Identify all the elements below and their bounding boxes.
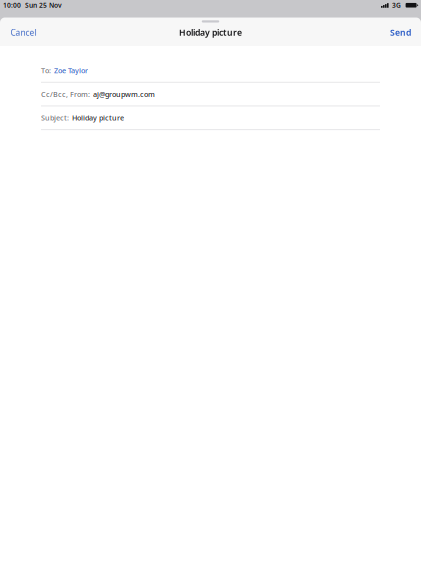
staticText: Send xyxy=(390,26,411,38)
staticText: Holiday picture xyxy=(72,113,124,123)
staticText: Zoe Taylor xyxy=(54,65,88,75)
staticText: Subject: xyxy=(41,113,69,123)
button[interactable]: Send xyxy=(381,21,421,43)
staticText: 10:00 xyxy=(3,1,21,10)
button[interactable]: Cancel xyxy=(0,22,45,43)
staticText: To: xyxy=(41,65,51,75)
staticText: Holiday picture xyxy=(179,26,242,38)
staticText: Sun 25 Nov xyxy=(25,1,62,10)
staticText: Cc/Bcc, From: xyxy=(41,89,90,99)
staticText: 3G xyxy=(392,1,401,10)
staticText: Cancel xyxy=(10,27,36,38)
staticText: aj@groupwm.com xyxy=(93,89,155,99)
